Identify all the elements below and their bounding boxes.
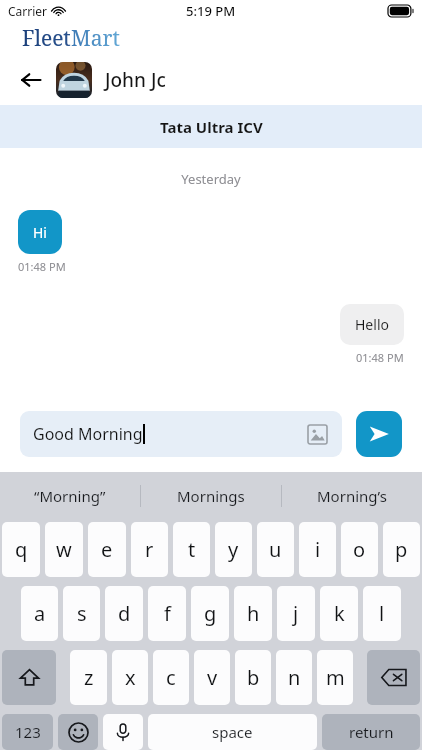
staticText: w xyxy=(56,536,72,563)
staticText: return xyxy=(349,722,394,742)
staticText: f xyxy=(164,600,171,627)
staticText: z xyxy=(84,664,94,691)
staticText: Mart xyxy=(71,24,120,53)
button[interactable]: Backspace xyxy=(367,650,420,705)
button[interactable]: Mornings xyxy=(141,472,281,520)
button[interactable]: return xyxy=(322,714,420,750)
button[interactable]: r xyxy=(131,522,168,577)
staticText: v xyxy=(207,664,218,691)
staticText: i xyxy=(315,536,321,563)
button[interactable]: a xyxy=(21,586,58,641)
staticText: Mornings xyxy=(177,486,245,506)
button[interactable]: i xyxy=(299,522,336,577)
staticText: x xyxy=(125,664,136,691)
staticText: t xyxy=(188,536,196,563)
button[interactable]: b xyxy=(235,650,271,705)
button[interactable]: c xyxy=(153,650,189,705)
staticText: 01:48 PM xyxy=(18,259,66,274)
button[interactable]: Back xyxy=(14,63,48,97)
staticText: u xyxy=(269,536,282,563)
button[interactable]: Hello xyxy=(340,304,404,345)
button[interactable]: space xyxy=(148,714,317,750)
staticText: c xyxy=(166,664,176,691)
button[interactable]: g xyxy=(191,586,229,641)
button[interactable]: s xyxy=(63,586,100,641)
button[interactable]: e xyxy=(88,522,126,577)
staticText: space xyxy=(212,722,253,742)
button[interactable]: n xyxy=(276,650,312,705)
button[interactable]: w xyxy=(45,522,83,577)
button[interactable]: Shift xyxy=(2,650,56,705)
staticText: g xyxy=(204,600,217,627)
staticText: s xyxy=(77,600,87,627)
button[interactable]: “Morning” xyxy=(0,472,140,520)
staticText: Fleet xyxy=(22,24,71,53)
staticText: q xyxy=(15,536,28,563)
button[interactable]: u xyxy=(257,522,294,577)
button[interactable]: Dictation xyxy=(103,714,143,750)
button[interactable]: z xyxy=(70,650,107,705)
button[interactable]: Emoji xyxy=(58,714,98,750)
button[interactable]: Hi xyxy=(18,210,62,254)
staticText: Yesterday xyxy=(18,170,404,188)
button[interactable]: v xyxy=(194,650,230,705)
button[interactable]: p xyxy=(383,522,420,577)
staticText: Good Morning xyxy=(33,423,143,445)
button[interactable]: j xyxy=(277,586,315,641)
staticText: r xyxy=(145,536,154,563)
button[interactable]: k xyxy=(320,586,358,641)
button[interactable]: q xyxy=(2,522,40,577)
staticText: j xyxy=(293,600,299,627)
staticText: e xyxy=(101,536,113,563)
staticText: h xyxy=(247,600,260,627)
button[interactable]: Good Morning xyxy=(20,411,342,457)
staticText: Tata Ultra ICV xyxy=(160,117,263,137)
button[interactable]: Send xyxy=(356,411,402,457)
button[interactable]: d xyxy=(105,586,143,641)
button[interactable]: x xyxy=(112,650,148,705)
button[interactable]: John Jc xyxy=(105,67,166,93)
button[interactable]: Attach image xyxy=(305,422,329,446)
staticText: 123 xyxy=(15,722,41,742)
staticText: n xyxy=(288,664,301,691)
button[interactable]: 123 xyxy=(2,714,53,750)
button[interactable]: f xyxy=(148,586,186,641)
button[interactable]: h xyxy=(234,586,272,641)
button[interactable]: Profile photo xyxy=(56,62,92,98)
staticText: a xyxy=(34,600,46,627)
staticText: Hi xyxy=(33,223,47,242)
button[interactable]: l xyxy=(363,586,401,641)
staticText: “Morning” xyxy=(34,486,106,506)
staticText: b xyxy=(247,664,260,691)
staticText: Hello xyxy=(355,315,389,334)
button[interactable]: m xyxy=(317,650,353,705)
staticText: o xyxy=(353,536,366,563)
staticText: l xyxy=(379,600,385,627)
staticText: 01:48 PM xyxy=(356,350,404,365)
staticText: 5:19 PM xyxy=(186,2,236,20)
staticText: Carrier xyxy=(8,3,48,19)
staticText: m xyxy=(326,664,345,691)
staticText: k xyxy=(334,600,345,627)
staticText: p xyxy=(395,536,408,563)
staticText: d xyxy=(118,600,131,627)
button[interactable]: o xyxy=(341,522,378,577)
button[interactable]: Morning’s xyxy=(282,472,422,520)
staticText: y xyxy=(228,536,239,563)
button[interactable]: y xyxy=(215,522,252,577)
staticText: Morning’s xyxy=(317,486,387,506)
button[interactable]: t xyxy=(173,522,210,577)
